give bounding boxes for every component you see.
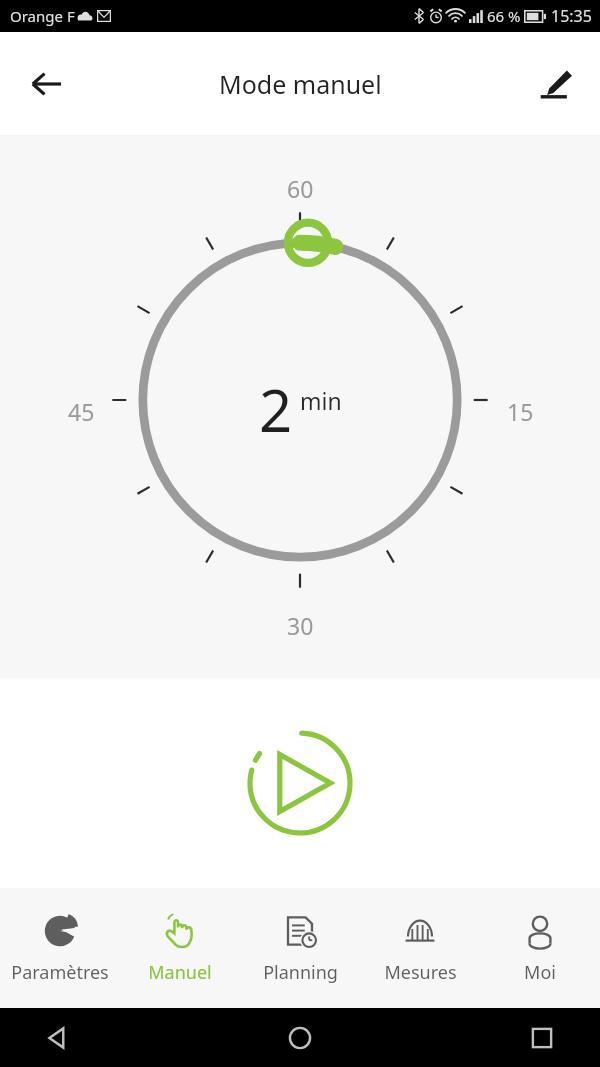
staticText: Paramètres (11, 960, 109, 985)
button[interactable]: Start (235, 718, 365, 848)
staticText: Planning (263, 960, 338, 985)
button[interactable]: Planning (240, 888, 360, 1008)
staticText: 60 (287, 173, 314, 204)
staticText: 2 (259, 370, 293, 449)
button[interactable]: Moi (480, 888, 600, 1008)
staticText: 45 (68, 396, 95, 427)
button[interactable]: Recents (518, 1014, 566, 1062)
staticText: 15:35 (551, 5, 592, 27)
staticText: Moi (524, 960, 556, 985)
button[interactable]: Mesures (360, 888, 480, 1008)
button[interactable]: Manuel (120, 888, 240, 1008)
staticText: 30 (287, 610, 314, 641)
staticText: min (300, 385, 342, 416)
staticText: Mesures (384, 960, 457, 985)
button[interactable]: Back (34, 1014, 82, 1062)
staticText: 15 (507, 396, 534, 427)
staticText: Mode manuel (219, 67, 382, 101)
staticText: 66 % (487, 6, 521, 26)
button[interactable]: Paramètres (0, 888, 120, 1008)
button[interactable]: Home (276, 1014, 324, 1062)
button[interactable]: Back (18, 56, 74, 112)
button[interactable]: Edit (528, 56, 584, 112)
staticText: Orange F (10, 6, 75, 26)
staticText: Manuel (148, 960, 212, 985)
